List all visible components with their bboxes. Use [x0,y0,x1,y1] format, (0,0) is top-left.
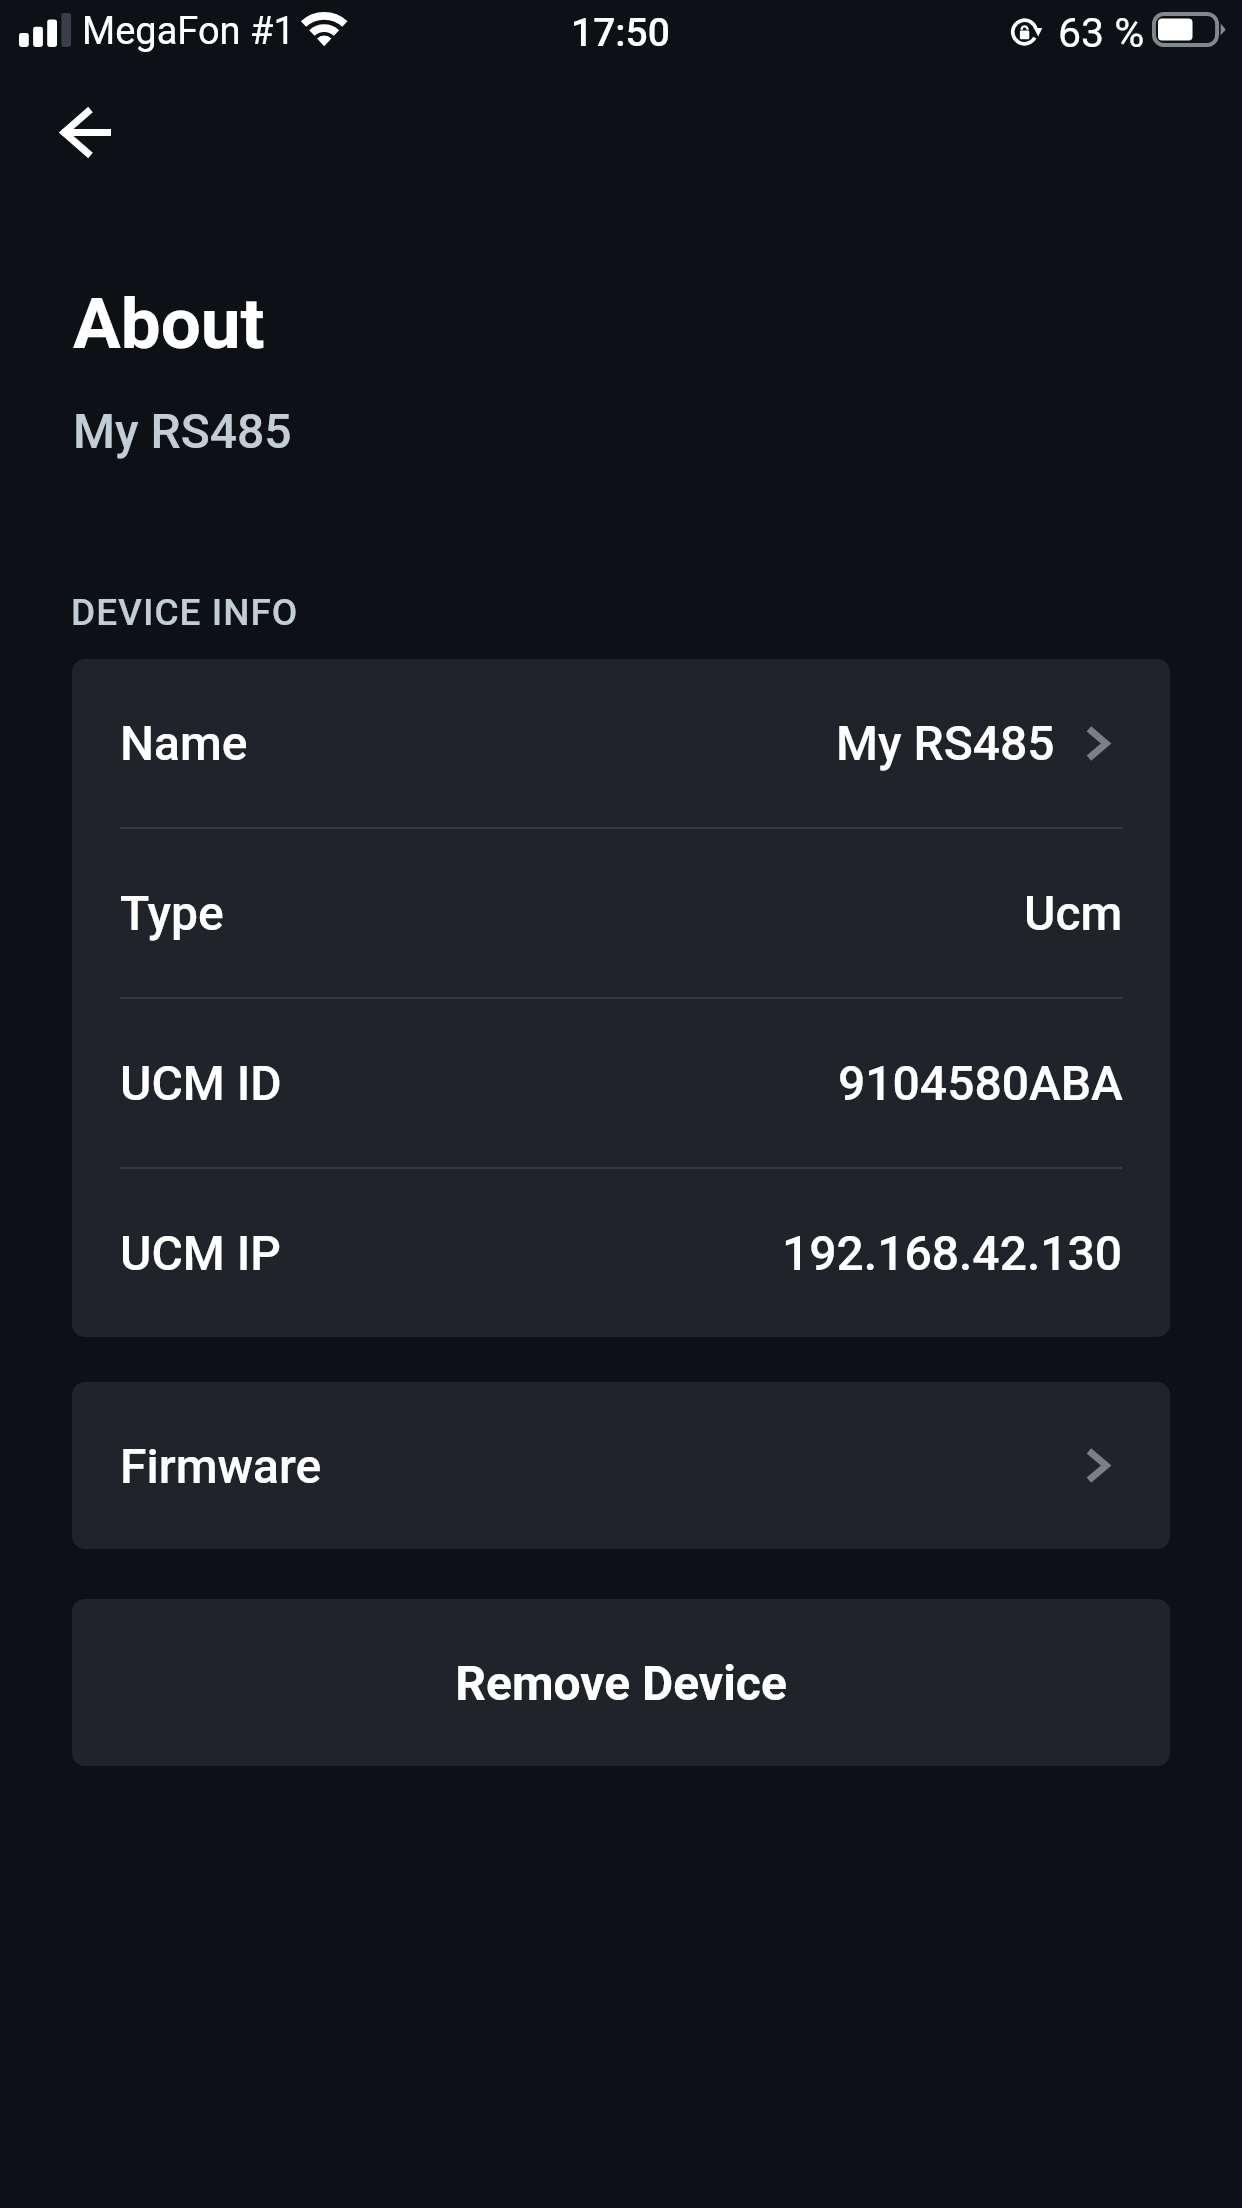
staticText: DEVICE INFO [71,591,299,634]
staticText: MegaFon #1 [82,9,295,54]
staticText: My RS485 [836,715,1055,771]
staticText: 192.168.42.130 [782,1225,1123,1281]
button[interactable]: Remove Device [72,1599,1170,1766]
staticText: 17:50 [571,10,670,56]
staticText: About [73,282,265,365]
staticText: UCM ID [120,1055,282,1111]
button[interactable]: Name [72,659,1170,827]
staticText: Firmware [120,1438,322,1494]
staticText: Name [120,715,248,771]
staticText: 9104580ABA [838,1055,1123,1111]
staticText: UCM IP [120,1225,281,1281]
button[interactable]: Type [72,829,1170,997]
staticText: Type [120,885,224,941]
staticText: 63 % [1058,9,1145,57]
button[interactable]: Firmware [72,1382,1170,1549]
staticText: Remove Device [455,1655,787,1711]
button[interactable]: UCM ID [72,999,1170,1167]
button[interactable]: UCM IP [72,1169,1170,1337]
staticText: Ucm [1024,885,1123,941]
button[interactable]: Back [26,72,146,192]
staticText: My RS485 [73,403,292,459]
